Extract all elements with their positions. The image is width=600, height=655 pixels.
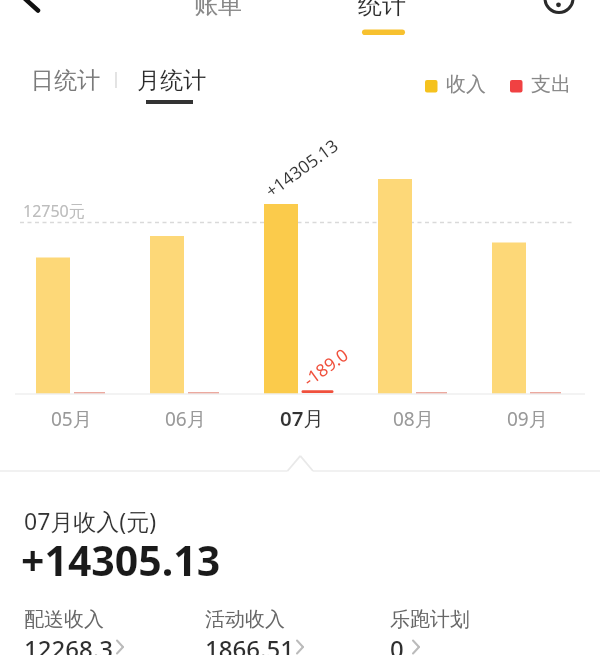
staticText: +14305.13 <box>21 532 221 588</box>
button[interactable] <box>537 0 581 26</box>
staticText: 活动收入 <box>205 607 285 632</box>
staticText: 08月 <box>393 406 434 432</box>
staticText: 06月 <box>165 406 206 432</box>
staticText: 07月收入(元) <box>24 505 157 536</box>
staticText: 12750元 <box>23 200 85 222</box>
staticText: 09月 <box>507 406 548 432</box>
button[interactable]: 活动收入 <box>205 607 294 655</box>
staticText: 1866.51 <box>205 632 294 655</box>
staticText: 05月 <box>51 406 92 432</box>
staticText: 07月 <box>280 404 324 432</box>
staticText: 12268.3 <box>24 632 113 655</box>
staticText: 收入 <box>446 72 486 97</box>
staticText: 配送收入 <box>24 607 104 632</box>
staticText: +14305.13 <box>260 133 343 202</box>
button[interactable]: 月统计 <box>137 66 206 95</box>
button[interactable] <box>178 0 258 36</box>
button[interactable] <box>342 0 422 36</box>
button[interactable] <box>8 0 54 30</box>
button[interactable]: 日统计 <box>31 66 100 95</box>
button[interactable]: 乐跑计划 <box>390 607 470 655</box>
staticText: 0 <box>390 632 404 655</box>
staticText: 支出 <box>531 72 571 97</box>
staticText: 账单 <box>194 0 242 20</box>
staticText: 乐跑计划 <box>390 607 470 632</box>
staticText: 统计 <box>358 0 406 20</box>
staticText: -189.0 <box>298 342 353 391</box>
button[interactable]: 配送收入 <box>24 607 113 655</box>
